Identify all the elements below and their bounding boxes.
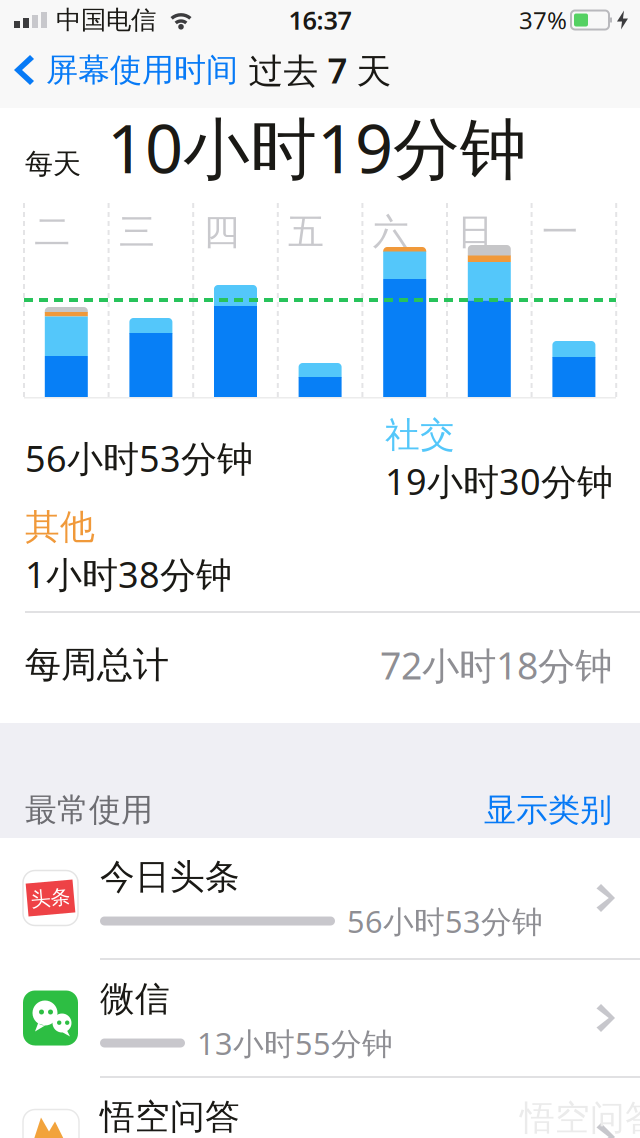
staticText: 悟空问答 [520,1097,640,1138]
staticText: 13小时55分钟 [197,1023,393,1063]
staticText: 六 [373,210,409,254]
button[interactable]: 悟空问答 [0,1078,640,1138]
staticText: 社交 [385,414,455,456]
staticText: 显示类别 [484,790,612,830]
staticText: 过去 7 天 [248,47,391,93]
staticText: 三 [119,210,155,254]
staticText: 中国电信 [56,4,156,35]
staticText: 每天 [25,147,81,181]
button[interactable]: 显示类别 [484,789,612,831]
staticText: 悟空问答 [100,1096,240,1138]
staticText: 72小时18分钟 [380,640,612,690]
staticText: 10小时19分钟 [107,103,527,191]
staticText: 二 [34,210,70,254]
staticText: 日 [457,210,493,254]
staticText: 37% [519,4,567,36]
staticText: 其他 [25,506,95,548]
staticText: 五 [288,210,324,254]
staticText: 一 [542,210,578,254]
staticText: 最常使用 [25,790,153,830]
button[interactable]: 微信 [0,960,640,1076]
button[interactable]: 屏幕使用时间 [10,36,238,104]
staticText: 每周总计 [25,643,169,687]
staticText: 头条 [30,886,70,910]
staticText: 56小时53分钟 [347,901,543,941]
staticText: 16:37 [288,3,351,37]
staticText: 四 [203,210,239,254]
button[interactable]: 头条 [0,838,640,958]
staticText: 今日头条 [100,856,240,898]
staticText: 19小时30分钟 [385,457,613,505]
staticText: 1小时38分钟 [25,550,232,598]
staticText: 56小时53分钟 [25,434,253,482]
staticText: 屏幕使用时间 [46,50,238,90]
staticText: 微信 [100,978,170,1020]
